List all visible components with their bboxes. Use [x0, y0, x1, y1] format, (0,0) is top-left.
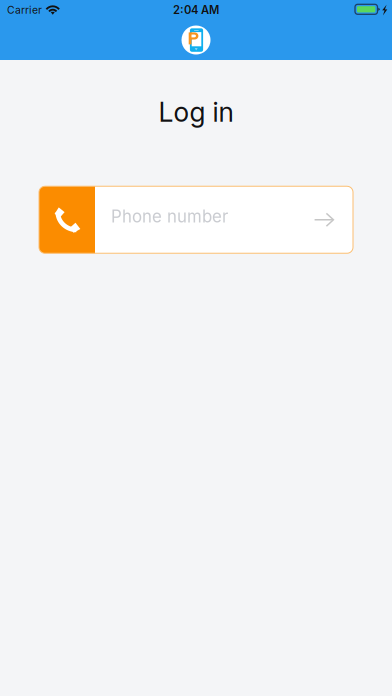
- staticText: 2:04 AM: [173, 3, 219, 17]
- button[interactable]: Enter phone number: [95, 186, 353, 253]
- button[interactable]: Call: [39, 186, 95, 253]
- staticText: Phone number: [111, 206, 228, 226]
- staticText: Carrier: [7, 4, 42, 16]
- staticText: Log in: [158, 96, 233, 128]
